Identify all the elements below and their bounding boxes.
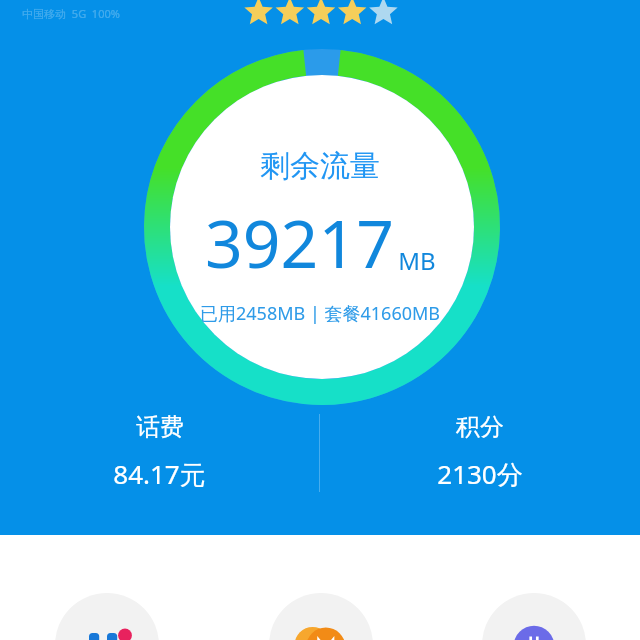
staticText: 话费 <box>136 412 184 442</box>
staticText: 积分 <box>456 412 504 442</box>
staticText: MB <box>398 244 436 277</box>
staticText: 剩余流量 <box>260 147 380 185</box>
button[interactable]: 和包支付 <box>214 535 427 640</box>
button[interactable]: 营业厅 <box>427 535 640 640</box>
staticText: 84.17元 <box>113 456 206 492</box>
staticText: 中国移动 5G 100% <box>22 6 120 21</box>
button[interactable]: 和家亲 <box>0 535 214 640</box>
staticText: 39217 <box>205 197 394 287</box>
button[interactable]: 话费 <box>0 406 319 492</box>
button[interactable]: 积分 <box>320 406 640 492</box>
staticText: 2130分 <box>437 456 523 492</box>
staticText: 已用2458MB | 套餐41660MB <box>200 301 440 326</box>
